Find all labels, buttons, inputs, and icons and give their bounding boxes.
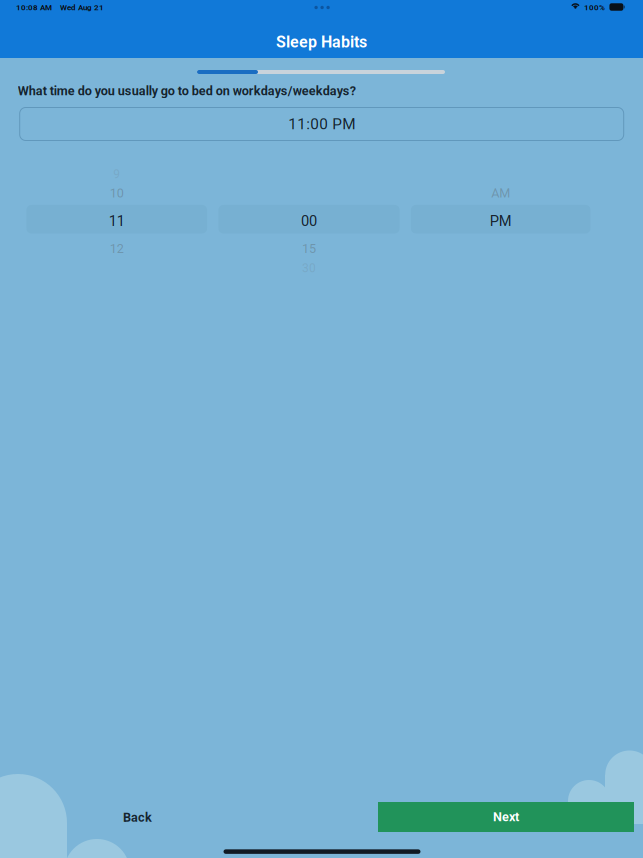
button[interactable]: Back: [82, 802, 192, 832]
staticText: Sleep Habits: [276, 33, 367, 51]
staticText: What time do you usually go to bed on wo…: [18, 84, 356, 98]
staticText: 10: [110, 186, 124, 201]
staticText: 11: [109, 212, 125, 230]
staticText: 00: [301, 212, 317, 230]
staticText: 11:00 PM: [288, 115, 355, 133]
button[interactable]: [218, 159, 400, 279]
staticText: 9: [113, 167, 120, 181]
button[interactable]: [411, 159, 590, 279]
staticText: Next: [493, 810, 519, 824]
staticText: 10:08 AM Wed Aug 21: [16, 3, 104, 12]
button[interactable]: 9: [26, 159, 207, 279]
staticText: 15: [302, 241, 316, 256]
staticText: 100%: [580, 3, 609, 12]
button[interactable]: Next: [378, 802, 634, 832]
staticText: AM: [491, 186, 510, 201]
staticText: PM: [490, 212, 512, 230]
staticText: 12: [110, 241, 124, 256]
staticText: 30: [302, 261, 316, 275]
staticText: Back: [123, 810, 152, 825]
